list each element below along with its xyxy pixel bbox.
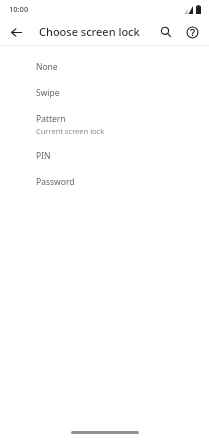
button[interactable]: PIN	[0, 143, 209, 169]
button[interactable]: Password	[0, 169, 209, 195]
staticText: Current screen lock	[36, 126, 105, 136]
button[interactable]: Pattern	[0, 106, 209, 143]
button[interactable]: Help	[179, 19, 205, 45]
button[interactable]: None	[0, 54, 209, 80]
staticText: Swipe	[36, 87, 60, 99]
button[interactable]: Swipe	[0, 80, 209, 106]
staticText: PIN	[36, 150, 51, 162]
staticText: Password	[36, 176, 75, 188]
staticText: Choose screen lock	[39, 24, 140, 39]
button[interactable]: Search	[153, 19, 179, 45]
staticText: Pattern	[36, 113, 66, 125]
button[interactable]: Back	[3, 19, 29, 45]
staticText: 10:00	[9, 4, 29, 14]
staticText: None	[36, 61, 58, 73]
